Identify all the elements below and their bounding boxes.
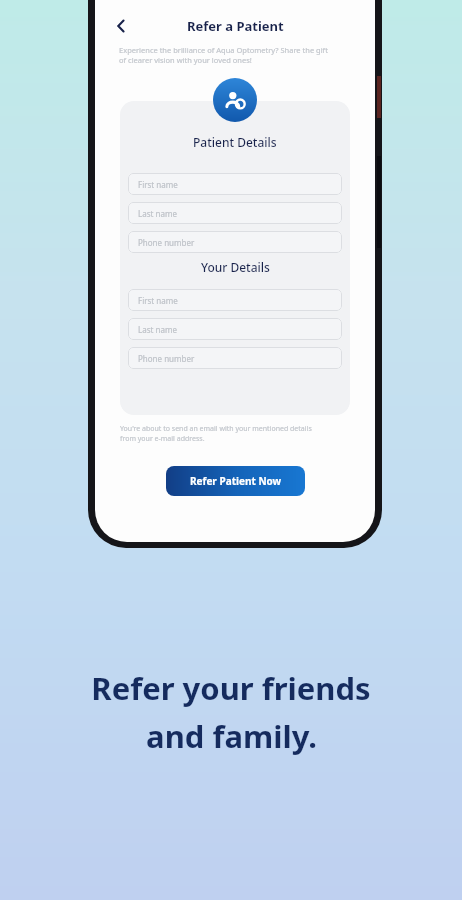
button[interactable]: Refer Patient Now <box>166 466 305 496</box>
staticText: Refer your friends <box>91 667 371 709</box>
staticText: from your e-mail address. <box>120 434 205 444</box>
staticText: First name <box>138 179 178 190</box>
staticText: Your Details <box>201 259 270 275</box>
staticText: First name <box>138 295 178 306</box>
button[interactable]: Phone number <box>128 347 342 369</box>
staticText: Refer a Patient <box>187 17 284 35</box>
button[interactable]: Last name <box>128 202 342 224</box>
staticText: Phone number <box>138 237 195 248</box>
staticText: and family. <box>146 715 317 757</box>
button[interactable]: First name <box>128 289 342 311</box>
button[interactable]: Back <box>107 12 135 40</box>
staticText: Refer Patient Now <box>190 474 282 488</box>
staticText: Experience the brilliance of Aqua Optome… <box>119 45 328 55</box>
button[interactable]: First name <box>128 173 342 195</box>
staticText: Phone number <box>138 353 195 364</box>
button[interactable]: Phone number <box>128 231 342 253</box>
button[interactable]: Last name <box>128 318 342 340</box>
staticText: Patient Details <box>193 134 277 150</box>
staticText: Last name <box>138 324 177 335</box>
staticText: of clearer vision with your loved ones! <box>119 55 252 65</box>
staticText: You're about to send an email with your … <box>120 424 312 434</box>
staticText: Last name <box>138 208 177 219</box>
